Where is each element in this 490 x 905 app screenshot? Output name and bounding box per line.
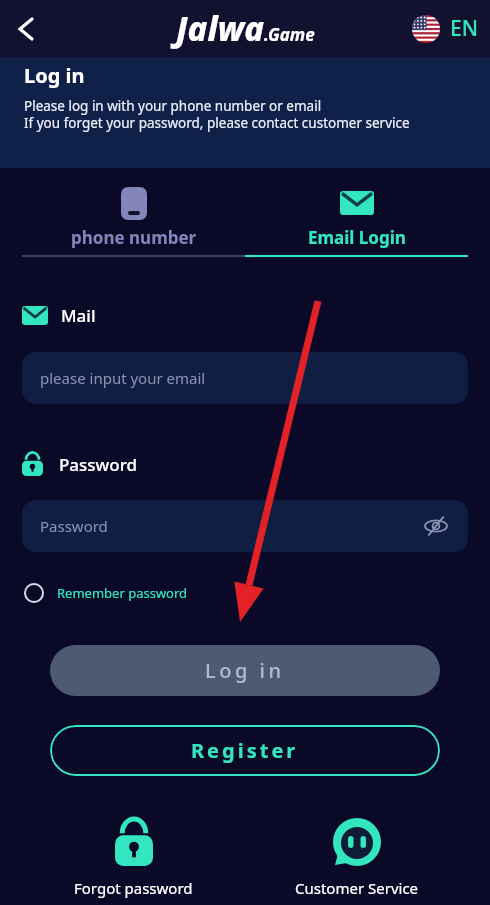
- staticText: Password: [40, 516, 108, 536]
- button[interactable]: phone number: [22, 186, 245, 257]
- button[interactable]: Password: [22, 500, 468, 552]
- staticText: Log in: [24, 62, 85, 89]
- staticText: Forgot password: [74, 878, 193, 898]
- staticText: Remember password: [57, 584, 188, 602]
- staticText: Mail: [61, 304, 96, 327]
- button[interactable]: Remember password: [22, 583, 188, 603]
- button[interactable]: EN: [412, 14, 478, 43]
- button[interactable]: please input your email: [22, 352, 468, 404]
- button[interactable]: Email Login: [245, 186, 468, 257]
- staticText: Please log in with your phone number or …: [24, 97, 410, 132]
- button[interactable]: Customer Service: [245, 818, 468, 898]
- button[interactable]: Register: [50, 725, 440, 776]
- staticText: phone number: [71, 226, 197, 249]
- button[interactable]: [8, 11, 44, 47]
- staticText: Email Login: [308, 226, 406, 249]
- staticText: Password: [59, 453, 138, 476]
- staticText: Register: [191, 737, 299, 764]
- staticText: EN: [450, 14, 478, 43]
- button[interactable]: Forgot password: [22, 818, 245, 898]
- staticText: please input your email: [40, 368, 206, 388]
- staticText: Customer Service: [295, 878, 419, 898]
- staticText: Jalwa.Game: [176, 6, 315, 51]
- button[interactable]: Log in: [50, 645, 440, 696]
- staticText: Log in: [205, 657, 285, 684]
